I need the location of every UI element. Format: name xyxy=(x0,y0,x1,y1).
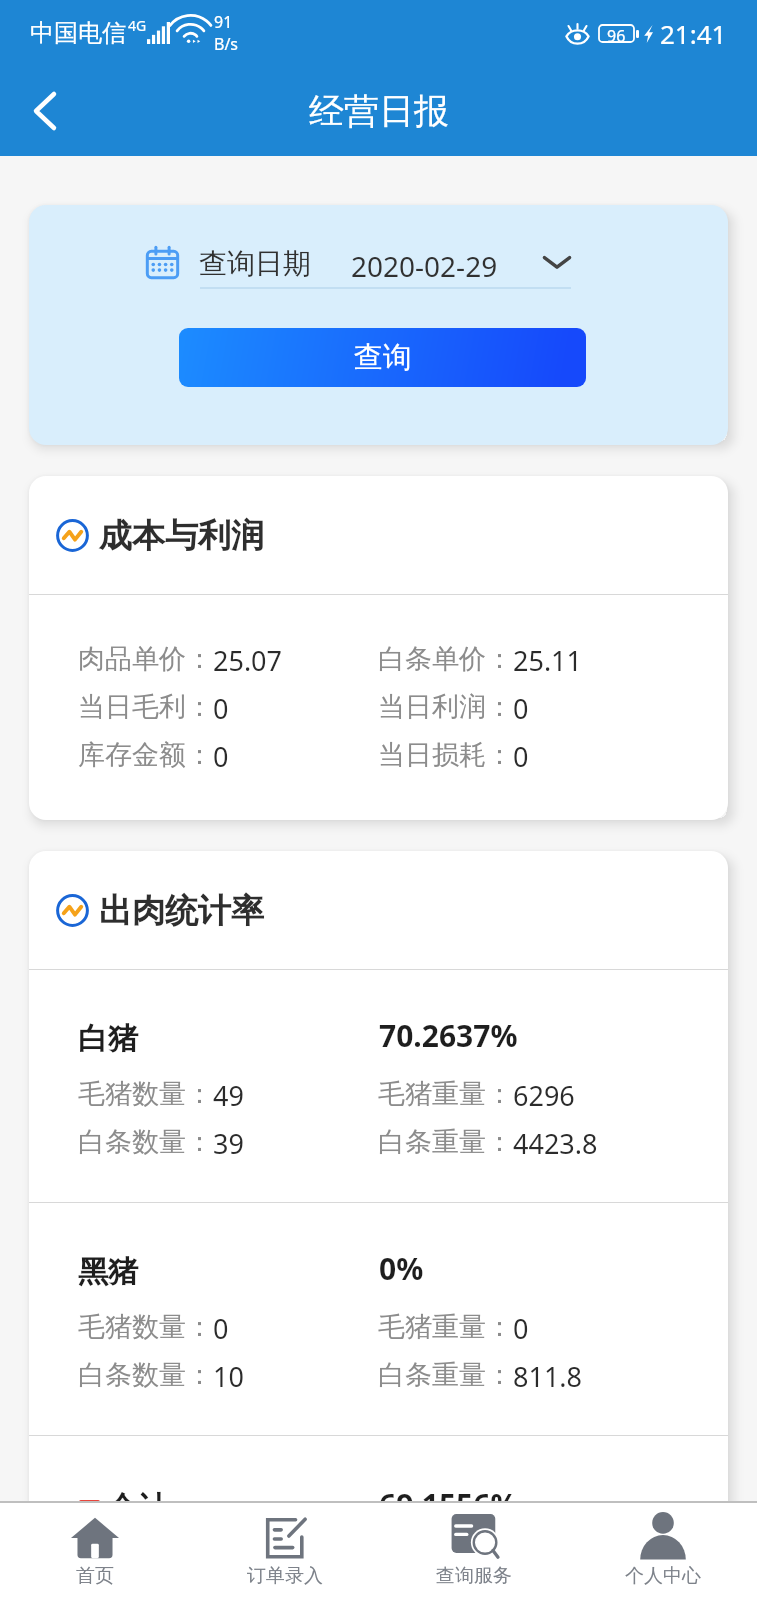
staticText: 白条重量： xyxy=(378,1358,513,1392)
staticText: 中国电信 xyxy=(30,18,126,48)
staticText: 0% xyxy=(379,1248,424,1289)
staticText: 49 xyxy=(213,1077,244,1114)
staticText: 白条重量： xyxy=(378,1125,513,1159)
staticText: 25.11 xyxy=(513,642,583,679)
staticText: 0 xyxy=(513,1310,529,1347)
staticText: 毛猪数量： xyxy=(78,1077,213,1111)
button[interactable]: 个人中心 xyxy=(568,1503,757,1600)
staticText: 0 xyxy=(213,738,229,775)
staticText: 经营日报 xyxy=(309,89,449,133)
button[interactable]: Back xyxy=(12,78,78,144)
staticText: 25.07 xyxy=(213,642,283,679)
staticText: 肉品单价： xyxy=(78,642,213,676)
staticText: 白条单价： xyxy=(378,642,513,676)
staticText: 811.8 xyxy=(513,1358,583,1395)
staticText: 0 xyxy=(213,1310,229,1347)
staticText: 查询日期 xyxy=(199,246,311,281)
staticText: 69.1556% xyxy=(379,1484,518,1501)
staticText: 0 xyxy=(513,738,529,775)
staticText: 70.2637% xyxy=(379,1015,518,1056)
staticText: 个人中心 xyxy=(625,1564,701,1588)
staticText: 39 xyxy=(213,1125,244,1162)
staticText: 库存金额： xyxy=(78,738,213,772)
staticText: 黑猪 xyxy=(78,1253,138,1291)
staticText: 当日损耗： xyxy=(378,738,513,772)
staticText: 0 xyxy=(213,690,229,727)
button[interactable]: 查询服务 xyxy=(379,1503,568,1600)
staticText: 订单录入 xyxy=(247,1564,323,1588)
staticText: 10 xyxy=(213,1358,244,1395)
staticText: 6296 xyxy=(513,1077,575,1114)
staticText: 合计 xyxy=(108,1489,168,1501)
staticText: 毛猪重量： xyxy=(378,1310,513,1344)
staticText: 查询 xyxy=(354,339,412,376)
staticText: 4G xyxy=(128,16,147,35)
staticText: 当日毛利： xyxy=(78,690,213,724)
staticText: 白条数量： xyxy=(78,1358,213,1392)
staticText: 查询服务 xyxy=(436,1564,512,1588)
staticText: 当日利润： xyxy=(378,690,513,724)
staticText: 91 xyxy=(214,11,233,33)
staticText: 白猪 xyxy=(78,1020,138,1058)
staticText: 0 xyxy=(513,690,529,727)
staticText: 出肉统计率 xyxy=(99,890,264,932)
staticText: 21:41 xyxy=(660,16,727,51)
button[interactable]: 查询 xyxy=(179,328,586,387)
staticText: 4423.8 xyxy=(513,1125,598,1162)
staticText: 96 xyxy=(607,25,626,42)
staticText: 毛猪重量： xyxy=(378,1077,513,1111)
staticText: 首页 xyxy=(76,1564,114,1588)
button[interactable]: 首页 xyxy=(0,1503,190,1600)
staticText: 成本与利润 xyxy=(99,515,264,557)
staticText: 毛猪数量： xyxy=(78,1310,213,1344)
staticText: B/s xyxy=(214,33,239,55)
staticText: 白条数量： xyxy=(78,1125,213,1159)
staticText: 2020-02-29 xyxy=(351,247,498,285)
button[interactable]: 订单录入 xyxy=(190,1503,379,1600)
